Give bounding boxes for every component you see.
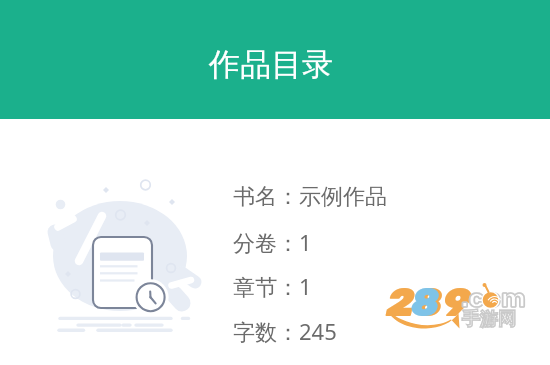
staticText: 分卷：1 [233,227,312,257]
staticText: 章节：1 [233,271,312,301]
staticText: 手游网 [462,308,516,331]
staticText: 作品目录 [209,45,333,84]
staticText: 手游网 [462,308,516,331]
staticText: 字数：245 [233,316,337,346]
staticText: 8 [411,279,440,326]
staticText: 书名：示例作品 [233,183,387,211]
staticText: .com [461,282,526,314]
staticText: .com [461,282,526,314]
staticText: 289 [386,279,470,326]
